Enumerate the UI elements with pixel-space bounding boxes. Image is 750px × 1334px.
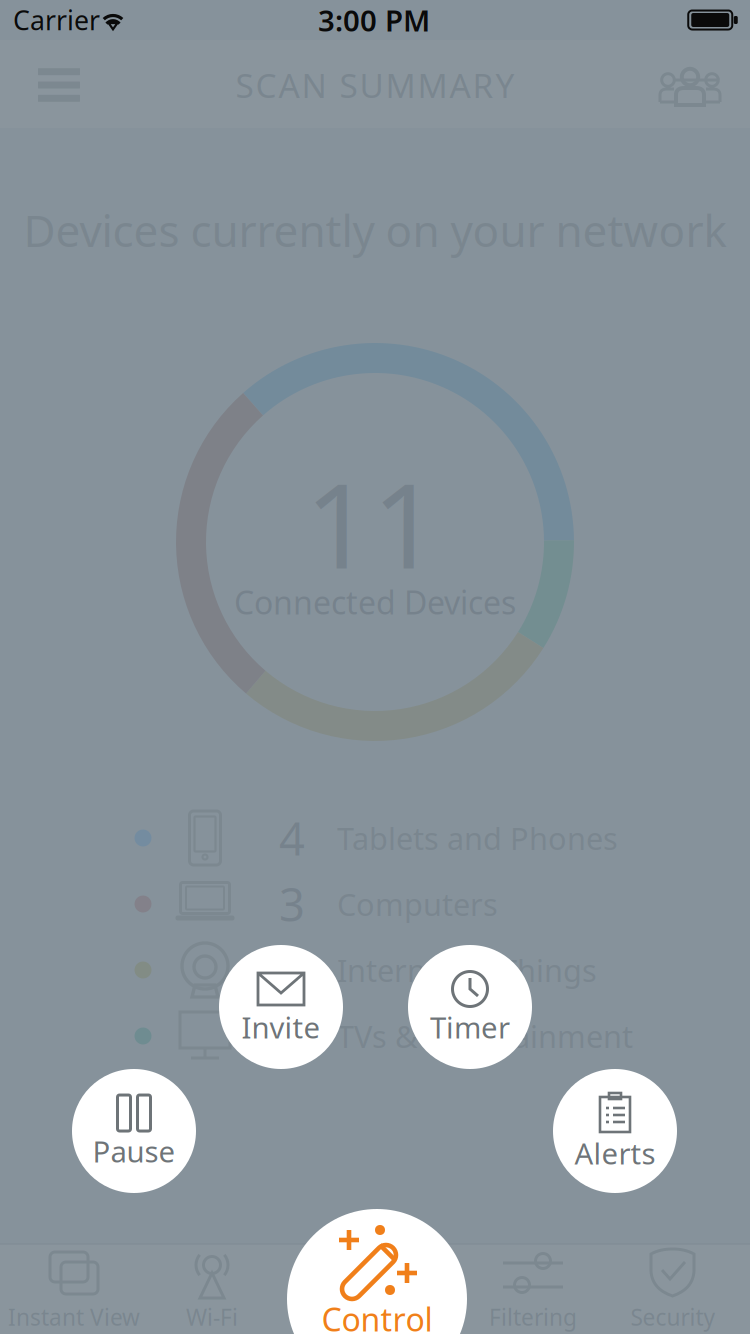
staticText: Internet of Things xyxy=(337,950,597,990)
staticText: 4 xyxy=(279,808,305,868)
staticText: Alerts xyxy=(574,1133,655,1172)
button[interactable]: Timer xyxy=(408,945,532,1069)
staticText: Devices currently on your network xyxy=(23,201,726,259)
staticText: Connected Devices xyxy=(234,581,516,623)
staticText: Instant View xyxy=(8,1302,140,1332)
staticText: 11 xyxy=(305,445,439,601)
button[interactable]: Menu xyxy=(16,43,102,127)
staticText: Carrier xyxy=(13,2,100,38)
button[interactable]: Instant View xyxy=(0,1244,149,1334)
button[interactable]: Security xyxy=(598,1244,748,1334)
staticText: Tablets and Phones xyxy=(337,818,618,858)
staticText: Timer xyxy=(430,1007,510,1046)
button[interactable]: Invite xyxy=(219,945,343,1069)
staticText: Security xyxy=(630,1302,715,1332)
button[interactable]: Filtering xyxy=(458,1244,608,1334)
staticText: Wi-Fi xyxy=(186,1302,238,1332)
staticText: Pause xyxy=(92,1131,175,1170)
staticText: Control xyxy=(321,1298,432,1334)
staticText: SCAN SUMMARY xyxy=(235,63,514,107)
button[interactable]: Pause xyxy=(72,1069,196,1193)
button[interactable]: People xyxy=(647,43,733,127)
staticText: 3 xyxy=(279,940,305,1000)
staticText: 3:00 PM xyxy=(318,0,430,39)
button[interactable]: Wi-Fi xyxy=(137,1244,287,1334)
staticText: TVs & Entertainment xyxy=(337,1016,633,1056)
button[interactable]: Control xyxy=(287,1209,467,1334)
staticText: Computers xyxy=(337,884,498,924)
button[interactable]: Alerts xyxy=(553,1069,677,1193)
staticText: Filtering xyxy=(489,1302,577,1332)
staticText: 3 xyxy=(279,874,305,934)
staticText: Invite xyxy=(241,1007,320,1046)
staticText: 1 xyxy=(279,1006,305,1066)
